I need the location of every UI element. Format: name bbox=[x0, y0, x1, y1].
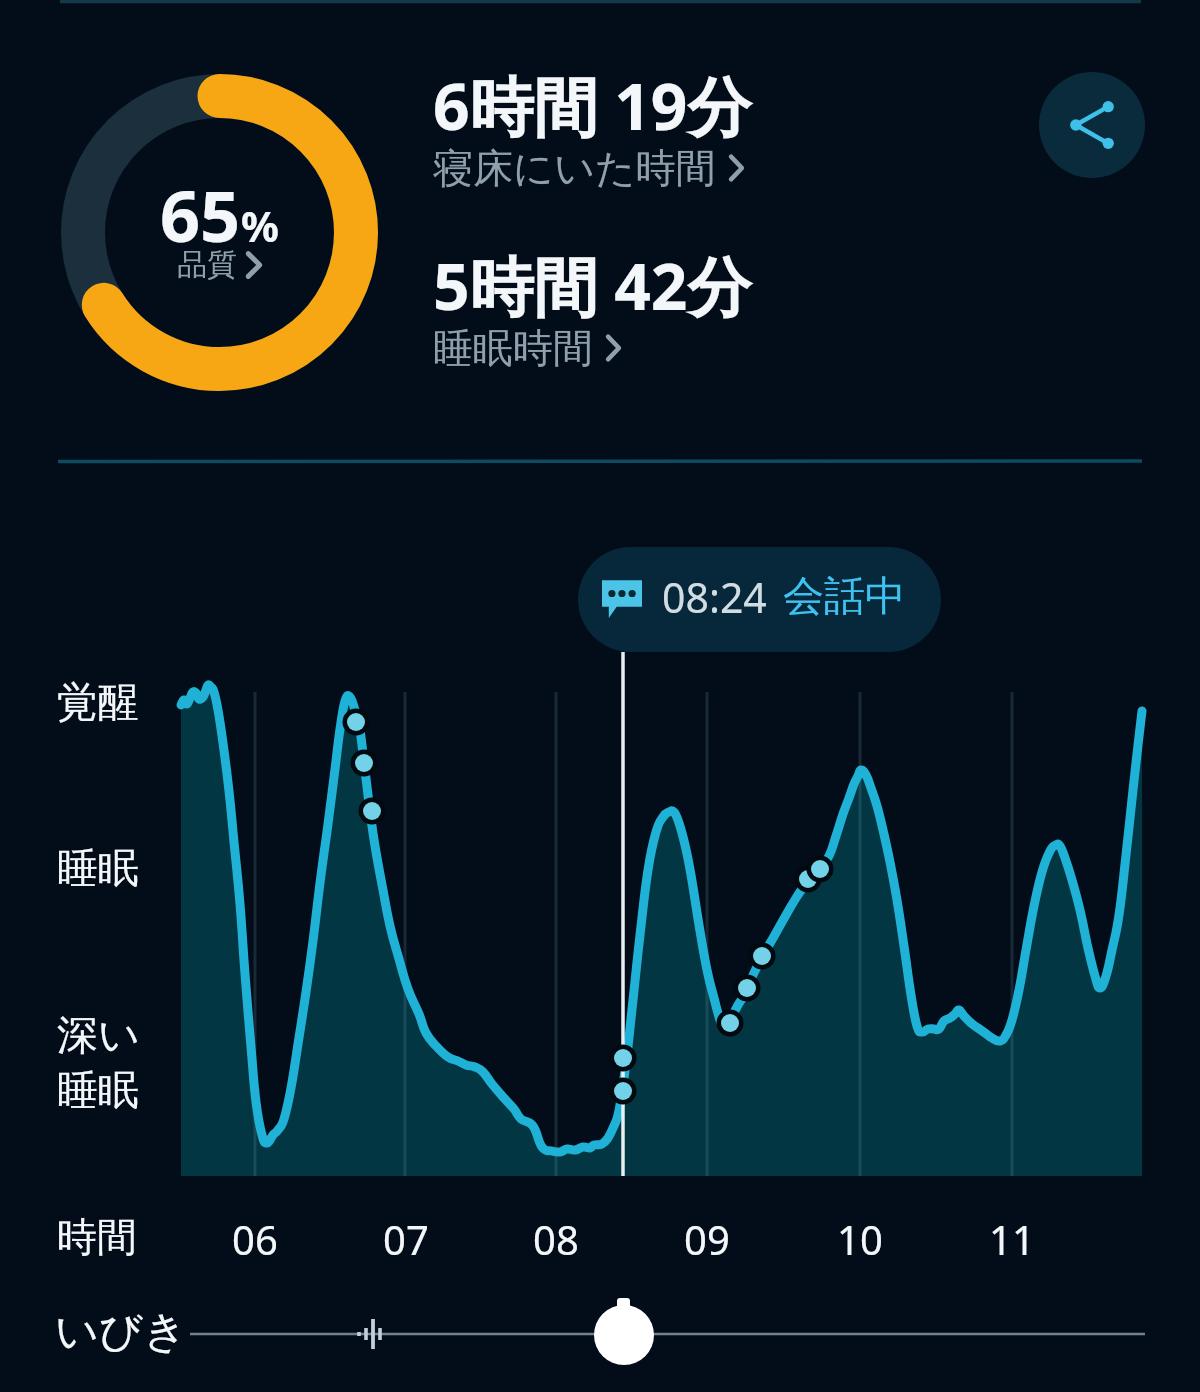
button[interactable]: Share bbox=[1039, 72, 1145, 178]
button[interactable]: 08:24 bbox=[578, 547, 941, 652]
button[interactable]: 65 bbox=[61, 74, 378, 391]
staticText: % bbox=[241, 197, 279, 254]
staticText: 08 bbox=[516, 1212, 596, 1266]
staticText: 09 bbox=[667, 1212, 747, 1266]
staticText: 11 bbox=[972, 1212, 1052, 1266]
staticText: 08:24 bbox=[662, 569, 767, 625]
staticText: 65 bbox=[160, 167, 241, 262]
staticText: 深い bbox=[57, 1010, 140, 1062]
staticText: 睡眠 bbox=[57, 1065, 139, 1117]
staticText: 6時間 19分 bbox=[433, 62, 752, 149]
staticText: 時間 bbox=[57, 1212, 137, 1262]
staticText: 会話中 bbox=[783, 571, 906, 623]
staticText: 10 bbox=[820, 1212, 900, 1266]
staticText: 品質 bbox=[177, 246, 237, 284]
button[interactable]: Sleep stage graph bbox=[181, 692, 1147, 1176]
staticText: 寝床にいた時間 bbox=[433, 143, 716, 193]
button[interactable]: 6時間 19分 bbox=[433, 62, 752, 199]
staticText: 睡眠時間 bbox=[433, 323, 593, 373]
staticText: 覚醒 bbox=[57, 677, 139, 729]
staticText: いびき bbox=[55, 1305, 188, 1359]
staticText: 5時間 42分 bbox=[433, 242, 752, 329]
staticText: 07 bbox=[366, 1212, 446, 1266]
button[interactable]: 5時間 42分 bbox=[433, 242, 752, 379]
staticText: 06 bbox=[215, 1212, 295, 1266]
button[interactable]: Snoring timeline position bbox=[592, 1303, 656, 1367]
staticText: 睡眠 bbox=[57, 843, 139, 895]
